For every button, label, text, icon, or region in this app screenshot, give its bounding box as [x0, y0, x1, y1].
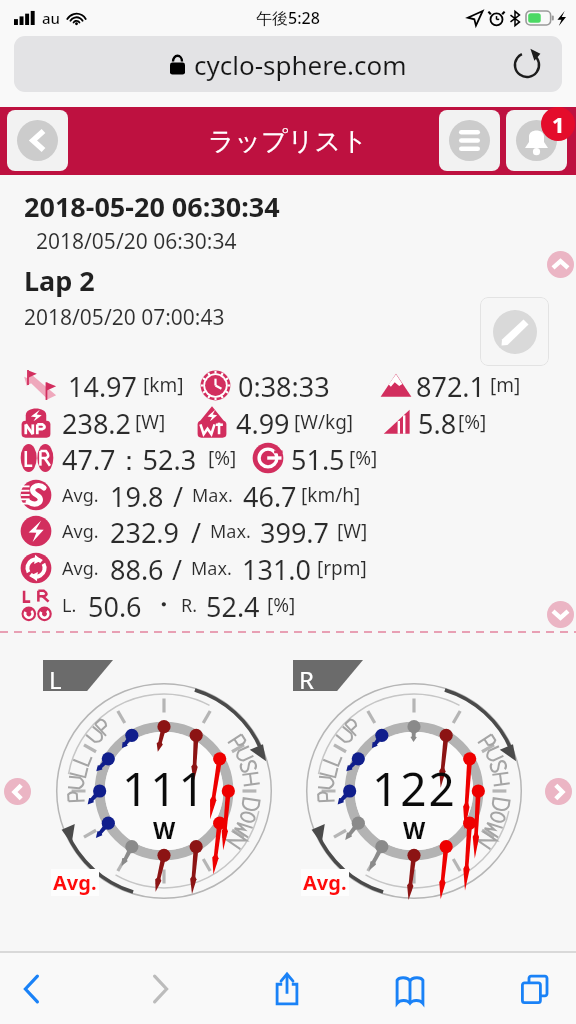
button[interactable]: Edit [480, 297, 549, 366]
staticText: Max. [191, 556, 232, 581]
staticText: 399.7 [260, 514, 330, 548]
staticText: Avg. [62, 556, 99, 581]
button[interactable]: Bookmarks [386, 967, 434, 1011]
staticText: 4.99 [236, 405, 290, 439]
staticText: [W] [135, 409, 166, 435]
staticText: 47.7：52.3 [62, 441, 197, 475]
button[interactable]: Tabs [511, 967, 559, 1011]
staticText: 1 [552, 109, 565, 139]
staticText: [%] [458, 409, 487, 435]
button[interactable]: Menu [439, 110, 500, 171]
staticText: [W] [337, 518, 368, 544]
staticText: 88.6 [110, 551, 164, 585]
button[interactable]: Next lap [545, 778, 572, 805]
staticText: [%] [349, 445, 378, 471]
staticText: [W/kg] [294, 409, 354, 435]
staticText: 50.6 [88, 588, 142, 622]
staticText: / [191, 514, 202, 548]
staticText: [%] [267, 592, 296, 618]
button[interactable]: Forward [136, 967, 184, 1011]
button[interactable]: Share [263, 967, 311, 1011]
staticText: ・ [150, 588, 177, 622]
staticText: / [173, 478, 184, 512]
staticText: au [42, 8, 60, 28]
staticText: Max. [192, 483, 233, 508]
staticText: 14.97 [68, 368, 138, 402]
staticText: 5.8 [418, 405, 457, 439]
staticText: ラップリスト [208, 125, 368, 158]
staticText: 46.7 [243, 478, 297, 512]
staticText: 午後5:28 [256, 7, 320, 29]
staticText: L [49, 663, 62, 696]
staticText: 111 [122, 757, 207, 820]
staticText: [%] [208, 445, 237, 471]
staticText: 2018/05/20 06:30:34 [36, 227, 237, 256]
button[interactable]: Previous [547, 251, 574, 278]
staticText: R. [181, 593, 198, 618]
staticText: Avg. [62, 519, 99, 544]
staticText: R [299, 663, 314, 696]
button[interactable]: cyclo-sphere.com [14, 36, 562, 92]
staticText: L. [62, 593, 77, 618]
button[interactable]: Next [547, 601, 574, 628]
staticText: 131.0 [242, 551, 312, 585]
button[interactable]: Back [7, 110, 68, 171]
staticText: Avg. [53, 869, 97, 896]
staticText: Max. [210, 519, 251, 544]
staticText: / [172, 551, 183, 585]
staticText: Lap 2 [24, 262, 95, 299]
staticText: Avg. [62, 483, 99, 508]
staticText: 232.9 [110, 514, 180, 548]
staticText: W [403, 814, 426, 845]
staticText: 2018/05/20 07:00:43 [24, 303, 225, 332]
button[interactable]: Notifications [506, 110, 567, 171]
staticText: cyclo-sphere.com [194, 47, 407, 82]
staticText: [rpm] [317, 555, 367, 581]
staticText: [m] [490, 372, 521, 398]
button[interactable]: Previous lap [4, 778, 31, 805]
staticText: Avg. [303, 869, 347, 896]
staticText: 2018-05-20 06:30:34 [24, 188, 280, 225]
staticText: 122 [372, 757, 457, 820]
button[interactable]: Reload [509, 47, 545, 83]
staticText: 872.1 [416, 368, 486, 402]
staticText: 238.2 [62, 405, 132, 439]
staticText: 19.8 [110, 478, 164, 512]
staticText: [km/h] [301, 482, 361, 508]
staticText: 52.4 [206, 588, 260, 622]
button[interactable]: Back [8, 967, 56, 1011]
staticText: [km] [143, 372, 184, 398]
button[interactable]: 1 notification [541, 107, 575, 141]
staticText: W [153, 814, 176, 845]
staticText: 51.5 [291, 441, 345, 475]
staticText: 0:38:33 [238, 368, 330, 402]
